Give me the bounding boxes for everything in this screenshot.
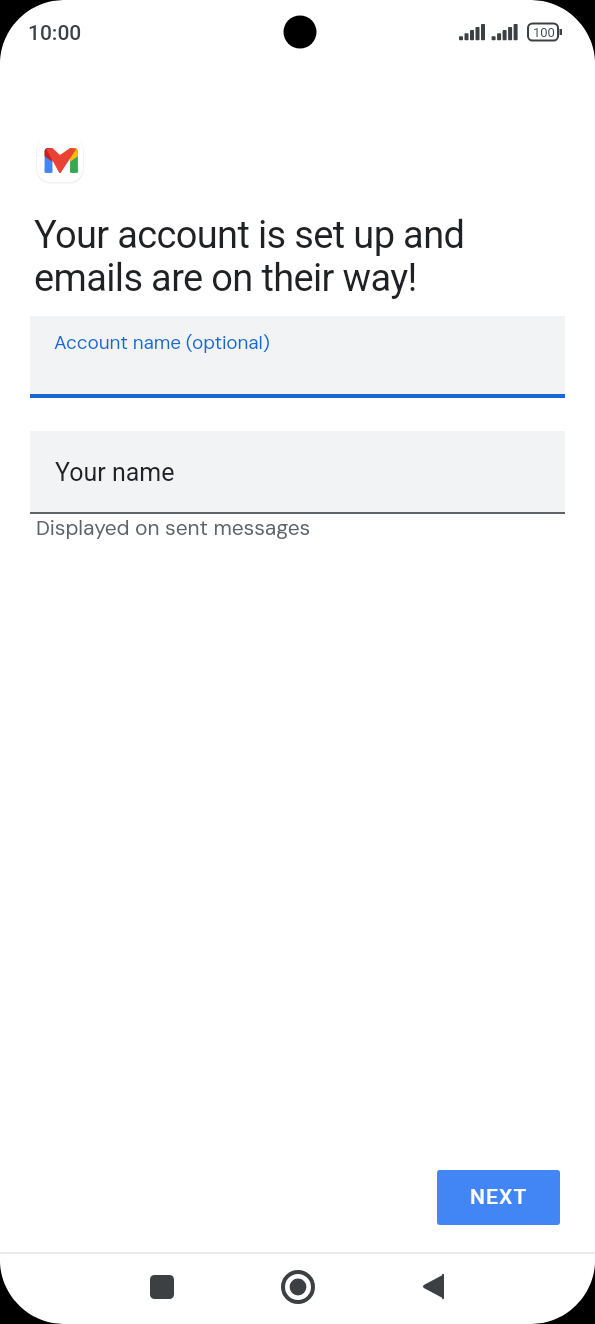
staticText: NEXT: [470, 1185, 528, 1210]
button[interactable]: Recent apps: [133, 1258, 190, 1315]
button[interactable]: Home: [269, 1258, 326, 1315]
staticText: Displayed on sent messages: [36, 514, 311, 541]
button[interactable]: NEXT: [437, 1170, 560, 1225]
staticText: 100: [533, 25, 555, 40]
button[interactable]: Back: [404, 1258, 461, 1315]
button[interactable]: Account name (optional): [30, 316, 565, 394]
staticText: Your account is set up and emails are on…: [34, 213, 504, 300]
staticText: 10:00: [28, 21, 82, 46]
button[interactable]: Your name: [30, 431, 565, 512]
staticText: Account name (optional): [54, 330, 270, 355]
staticText: Your name: [55, 458, 175, 487]
